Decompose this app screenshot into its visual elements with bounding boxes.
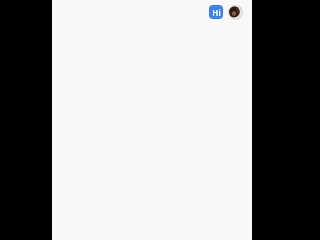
button[interactable]: Profile — [228, 5, 243, 20]
button[interactable]: Hi — [209, 5, 223, 19]
staticText: Hi — [212, 7, 221, 18]
